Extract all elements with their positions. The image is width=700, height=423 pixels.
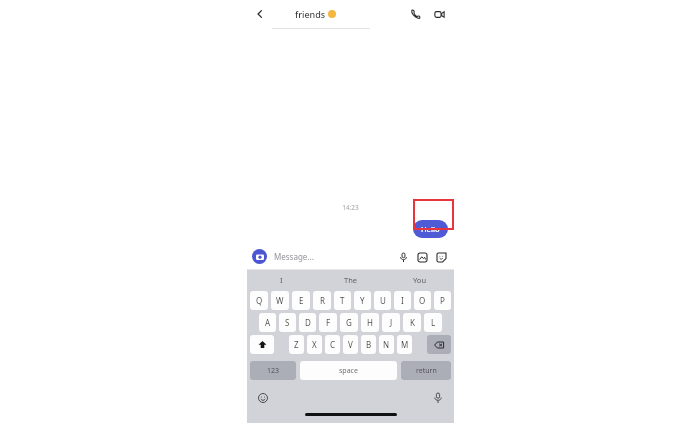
button[interactable]: Backspace (427, 335, 451, 354)
button[interactable]: Emoji (255, 390, 271, 406)
button[interactable]: You (385, 270, 454, 289)
button[interactable]: F (319, 313, 337, 332)
button[interactable]: B (361, 335, 376, 354)
staticText: R (320, 295, 325, 306)
staticText: O (419, 295, 426, 306)
button[interactable]: W (271, 291, 289, 310)
staticText: X (312, 339, 317, 350)
button[interactable]: C (325, 335, 340, 354)
staticText: I (280, 275, 283, 285)
staticText: Z (294, 339, 299, 350)
button[interactable]: I (394, 291, 411, 310)
staticText: The (344, 275, 358, 285)
button[interactable]: Shift (250, 335, 274, 354)
staticText: friends (295, 8, 328, 20)
staticText: Y (360, 295, 365, 306)
button[interactable]: Back (247, 0, 273, 28)
staticText: Q (256, 295, 263, 306)
button[interactable]: H (361, 313, 379, 332)
staticText: H (367, 317, 373, 328)
button[interactable]: Voice input (430, 390, 446, 406)
staticText: You (413, 275, 427, 285)
button[interactable]: Voice message (395, 249, 411, 265)
staticText: A (265, 317, 271, 328)
staticText: M (401, 339, 409, 350)
staticText: C (330, 339, 336, 350)
button[interactable]: return (401, 361, 451, 380)
staticText: space (339, 366, 358, 376)
button[interactable]: V (343, 335, 358, 354)
button[interactable]: Send photo (414, 249, 430, 265)
staticText: D (305, 317, 311, 328)
button[interactable]: N (379, 335, 394, 354)
button[interactable]: I (247, 270, 316, 289)
button[interactable]: G (340, 313, 358, 332)
staticText: W (276, 295, 284, 306)
staticText: U (380, 295, 386, 306)
staticText: K (410, 317, 415, 328)
staticText: J (390, 317, 393, 328)
button[interactable]: S (279, 313, 296, 332)
button[interactable]: R (313, 291, 331, 310)
button[interactable]: Call (404, 3, 426, 25)
button[interactable]: The (316, 270, 385, 289)
staticText: Message... (274, 251, 314, 262)
button[interactable]: T (334, 291, 351, 310)
staticText: N (383, 339, 390, 350)
button[interactable]: friends (295, 8, 336, 20)
button[interactable]: M (397, 335, 412, 354)
staticText: 123 (267, 366, 280, 376)
button[interactable]: A (259, 313, 276, 332)
button[interactable]: Video call (428, 3, 450, 25)
staticText: S (285, 317, 290, 328)
button[interactable]: P (434, 291, 451, 310)
button[interactable]: D (299, 313, 316, 332)
staticText: return (416, 366, 437, 376)
button[interactable]: O (414, 291, 431, 310)
button[interactable]: Message... (274, 251, 395, 262)
button[interactable]: space (300, 361, 397, 380)
staticText: T (340, 295, 345, 306)
button[interactable]: Open camera (252, 249, 267, 264)
button[interactable]: J (382, 313, 400, 332)
button[interactable]: E (292, 291, 310, 310)
button[interactable]: Z (289, 335, 304, 354)
staticText: B (366, 339, 372, 350)
button[interactable]: K (403, 313, 421, 332)
button[interactable]: Send sticker (433, 249, 449, 265)
button[interactable]: U (374, 291, 391, 310)
staticText: I (401, 295, 404, 306)
staticText: P (440, 295, 445, 306)
staticText: 14:23 (247, 203, 454, 212)
button[interactable]: L (424, 313, 442, 332)
staticText: L (431, 317, 436, 328)
staticText: E (299, 295, 304, 306)
staticText: G (346, 317, 352, 328)
button[interactable]: X (307, 335, 322, 354)
staticText: V (348, 339, 353, 350)
button[interactable]: 123 (250, 361, 296, 380)
button[interactable]: Y (354, 291, 371, 310)
staticText: F (326, 317, 331, 328)
button[interactable]: Hello (413, 220, 448, 238)
staticText: Hello (421, 224, 440, 234)
button[interactable]: Q (250, 291, 268, 310)
